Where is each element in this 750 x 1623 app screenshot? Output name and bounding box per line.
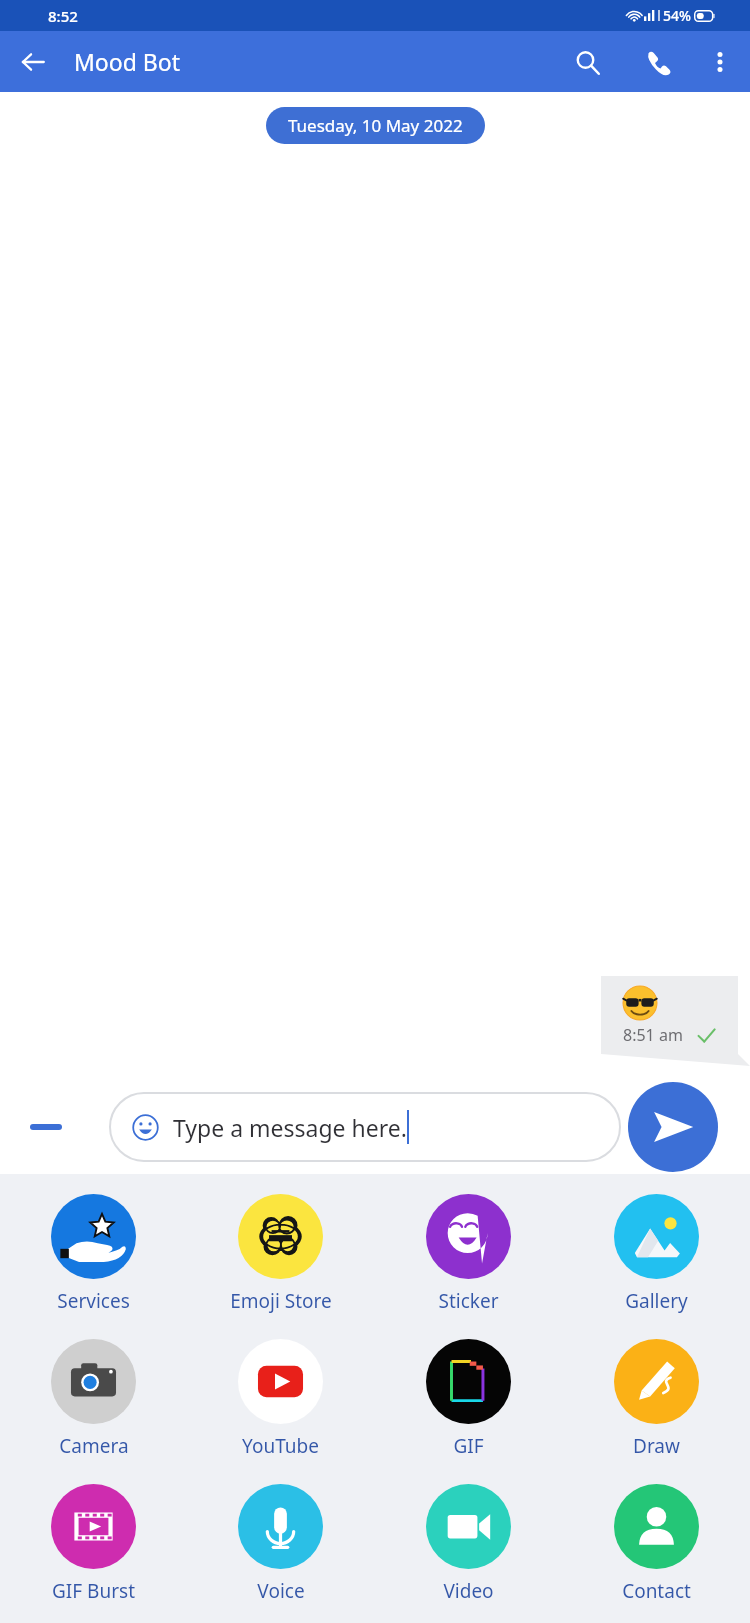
button[interactable]: Collapse <box>20 1101 72 1153</box>
staticText: 8:51 am <box>623 1024 683 1046</box>
staticText: YouTube <box>242 1433 319 1459</box>
button[interactable]: YouTube <box>187 1333 374 1465</box>
button[interactable]: Video <box>374 1478 562 1610</box>
button[interactable]: More options <box>698 40 742 84</box>
staticText: Camera <box>59 1433 129 1459</box>
button[interactable]: Send <box>628 1082 718 1172</box>
button[interactable]: Type a message here. <box>110 1093 620 1161</box>
staticText: GIF Burst <box>52 1578 135 1604</box>
button[interactable]: Draw <box>562 1333 750 1465</box>
button[interactable]: Emoji Store <box>187 1188 374 1320</box>
staticText: Draw <box>633 1433 680 1459</box>
staticText: Services <box>57 1288 130 1314</box>
button[interactable]: GIF Burst <box>0 1478 187 1610</box>
staticText: 8:52 <box>48 6 78 26</box>
staticText: Emoji Store <box>230 1288 332 1314</box>
button[interactable]: Contact <box>562 1478 750 1610</box>
button[interactable]: 8:51 am <box>601 976 750 1066</box>
staticText: Type a message here. <box>173 1112 407 1143</box>
button[interactable]: Search <box>564 39 610 85</box>
button[interactable]: Sticker <box>374 1188 562 1320</box>
staticText: Tuesday, 10 May 2022 <box>288 114 463 137</box>
staticText: GIF <box>453 1433 484 1459</box>
button[interactable]: Call <box>635 39 681 85</box>
staticText: Gallery <box>625 1288 688 1314</box>
button[interactable]: Gallery <box>562 1188 750 1320</box>
button[interactable]: Tuesday, 10 May 2022 <box>266 107 485 144</box>
button[interactable]: Voice <box>187 1478 374 1610</box>
staticText: Video <box>443 1578 494 1604</box>
button[interactable]: Back <box>10 39 56 85</box>
button[interactable]: Camera <box>0 1333 187 1465</box>
staticText: Voice <box>257 1578 305 1604</box>
staticText: Contact <box>622 1578 691 1604</box>
staticText: Mood Bot <box>74 46 180 77</box>
button[interactable]: GIF <box>374 1333 562 1465</box>
staticText: Sticker <box>438 1288 499 1314</box>
button[interactable]: Services <box>0 1188 187 1320</box>
staticText: 54% <box>663 6 691 25</box>
